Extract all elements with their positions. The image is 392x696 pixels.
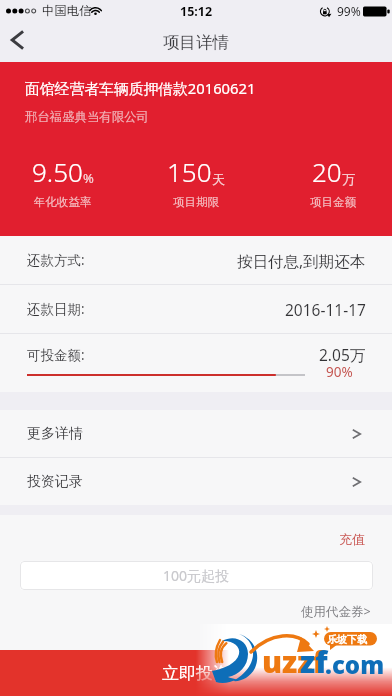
staticText: 99% [337, 3, 361, 19]
button[interactable]: Back [0, 22, 40, 62]
button[interactable]: 立即投资 [0, 650, 392, 696]
staticText: 充值 [339, 531, 365, 547]
staticText: .com [325, 648, 385, 681]
staticText: 20 [312, 154, 342, 189]
staticText: 150 [167, 154, 212, 189]
button[interactable]: 使用代金券> [301, 603, 371, 620]
button[interactable]: 还款日期: [0, 285, 392, 333]
button[interactable]: 投资记录 [0, 458, 392, 505]
staticText: 中国电信 [42, 3, 92, 19]
button[interactable]: 还款方式: [0, 236, 392, 284]
staticText: 2.05万 [319, 344, 366, 365]
staticText: 邢台福盛典当有限公司 [25, 109, 149, 125]
button[interactable]: 可投金额: [0, 334, 392, 392]
staticText: 乐坡下载 [327, 633, 367, 646]
staticText: 年化收益率 [34, 195, 92, 209]
staticText: 项目详情 [163, 32, 229, 53]
staticText: uzzf [262, 641, 325, 682]
staticText: 万 [342, 171, 355, 187]
staticText: 项目期限 [173, 195, 219, 209]
button[interactable]: 100元起投 [20, 561, 373, 590]
staticText: 还款日期: [27, 300, 85, 318]
staticText: 面馆经营者车辆质押借款20160621 [25, 78, 256, 98]
staticText: 2016-11-17 [285, 299, 366, 320]
staticText: 投资记录 [27, 473, 83, 491]
button[interactable]: 更多详情 [0, 410, 392, 457]
staticText: 100元起投 [163, 566, 230, 585]
staticText: 立即投资 [162, 663, 230, 684]
staticText: zf [300, 641, 328, 682]
staticText: 可投金额: [27, 346, 85, 364]
staticText: 使用代金券> [301, 603, 371, 620]
staticText: 15:12 [180, 3, 213, 20]
staticText: % [83, 169, 94, 187]
button[interactable]: 充值 [339, 531, 365, 547]
staticText: 天 [212, 171, 225, 187]
staticText: 项目金额 [310, 195, 356, 209]
staticText: 90% [326, 363, 353, 381]
staticText: 更多详情 [27, 425, 83, 443]
staticText: 还款方式: [27, 251, 85, 269]
staticText: 9.50 [32, 154, 83, 189]
staticText: 按日付息,到期还本 [237, 250, 366, 271]
